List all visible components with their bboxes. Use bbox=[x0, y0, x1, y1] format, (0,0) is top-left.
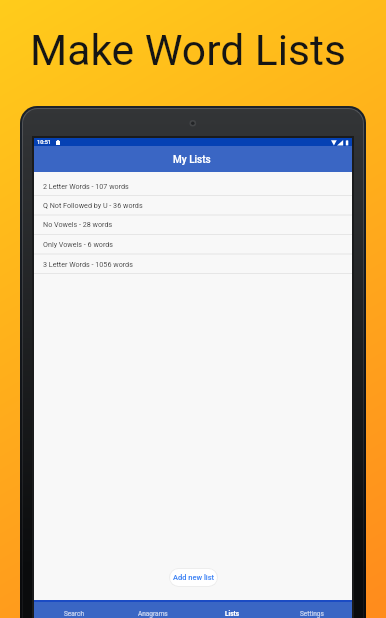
staticText: My Lists bbox=[173, 154, 211, 166]
staticText: Lists bbox=[225, 610, 240, 618]
button[interactable]: 2 Letter Words - 107 words bbox=[34, 176, 352, 195]
staticText: Settings bbox=[300, 610, 324, 618]
staticText: Q Not Followed by U - 36 words bbox=[43, 201, 143, 209]
button[interactable]: Settings bbox=[272, 602, 352, 618]
staticText: 3 Letter Words - 1056 words bbox=[43, 260, 133, 268]
staticText: 2 Letter Words - 107 words bbox=[43, 182, 129, 190]
button[interactable]: Add new list bbox=[170, 569, 217, 586]
button[interactable]: 3 Letter Words - 1056 words bbox=[34, 254, 352, 274]
button[interactable]: Anagrams bbox=[113, 602, 192, 618]
button[interactable]: Search bbox=[34, 602, 113, 618]
staticText: No Vowels - 28 words bbox=[43, 220, 113, 228]
staticText: Search bbox=[64, 610, 84, 618]
staticText: Anagrams bbox=[138, 610, 168, 618]
staticText: Only Vowels - 6 words bbox=[43, 240, 114, 248]
button[interactable]: No Vowels - 28 words bbox=[34, 214, 352, 234]
staticText: 10:51 bbox=[37, 139, 51, 145]
button[interactable]: Lists bbox=[192, 602, 272, 618]
staticText: Add new list bbox=[173, 573, 215, 582]
button[interactable]: Only Vowels - 6 words bbox=[34, 234, 352, 254]
button[interactable]: Q Not Followed by U - 36 words bbox=[34, 195, 352, 214]
staticText: Make Word Lists bbox=[30, 25, 346, 75]
